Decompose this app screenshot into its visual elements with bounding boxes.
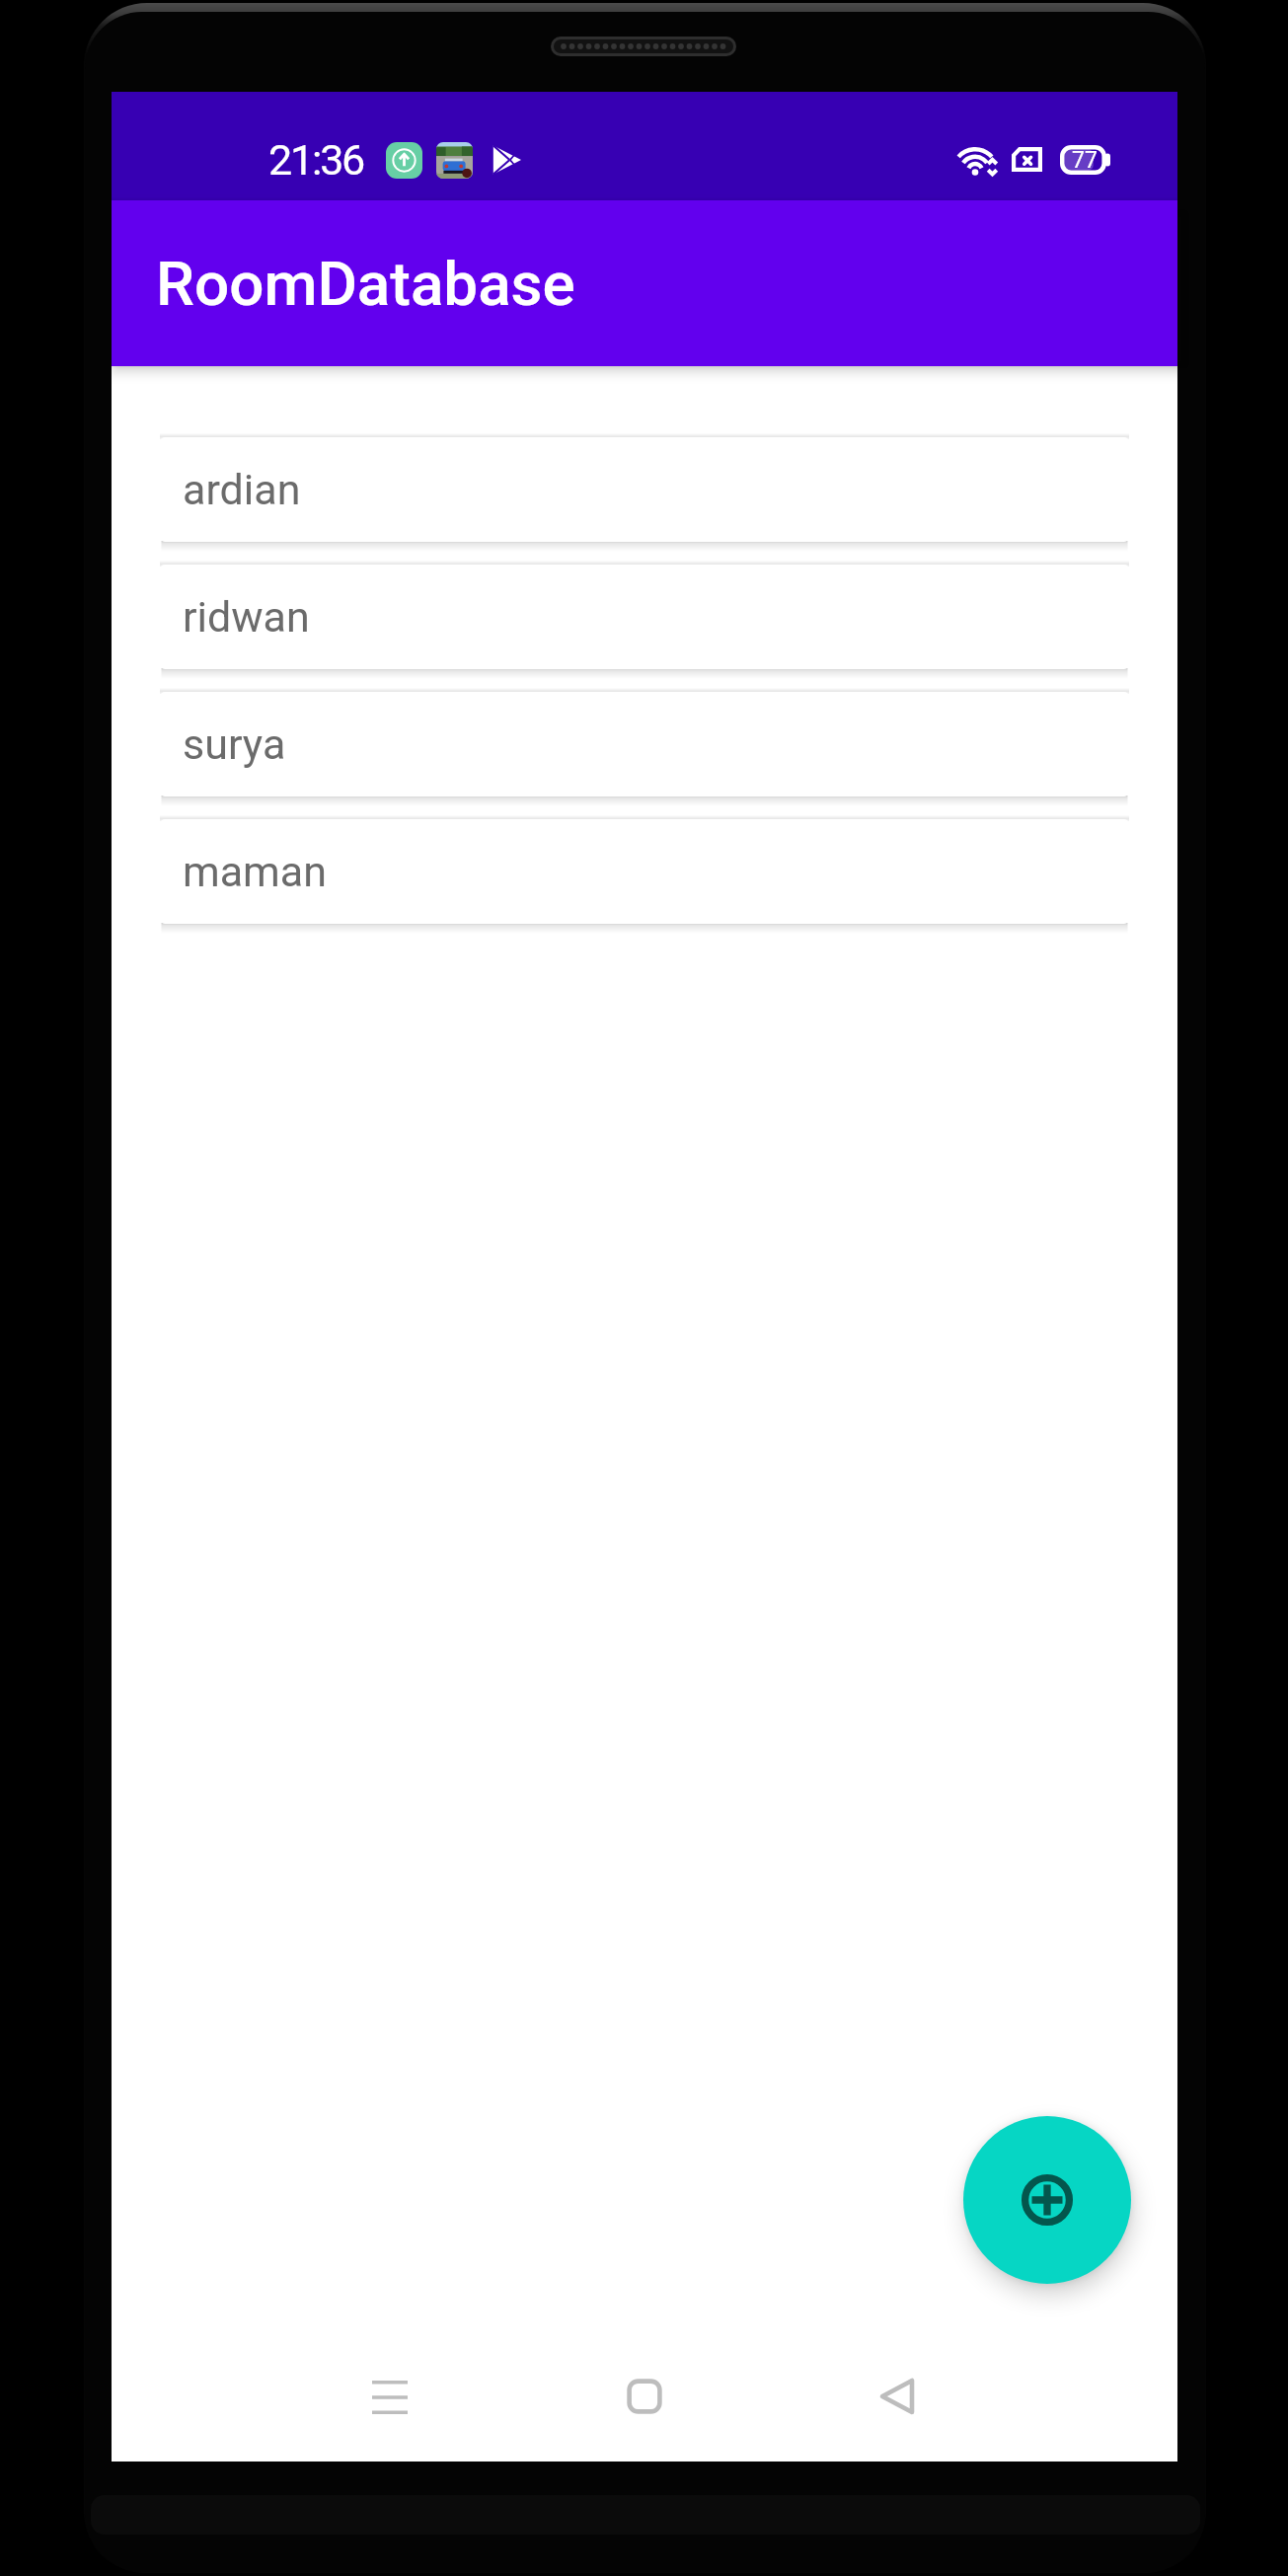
button[interactable]: Recent apps bbox=[342, 2350, 437, 2445]
staticText: 21:36 bbox=[268, 135, 364, 185]
button[interactable]: surya bbox=[160, 692, 1129, 796]
staticText: maman bbox=[183, 847, 327, 896]
button[interactable]: ridwan bbox=[160, 565, 1129, 669]
staticText: RoomDatabase bbox=[156, 248, 575, 320]
button[interactable]: Back bbox=[850, 2349, 945, 2444]
staticText: surya bbox=[183, 720, 286, 769]
staticText: 77 bbox=[1072, 147, 1098, 174]
staticText: ridwan bbox=[183, 592, 310, 642]
button[interactable]: ardian bbox=[160, 437, 1129, 542]
button[interactable]: maman bbox=[160, 819, 1129, 924]
staticText: ardian bbox=[183, 465, 301, 514]
button[interactable]: Home bbox=[597, 2349, 692, 2444]
button[interactable]: Add bbox=[963, 2116, 1131, 2284]
